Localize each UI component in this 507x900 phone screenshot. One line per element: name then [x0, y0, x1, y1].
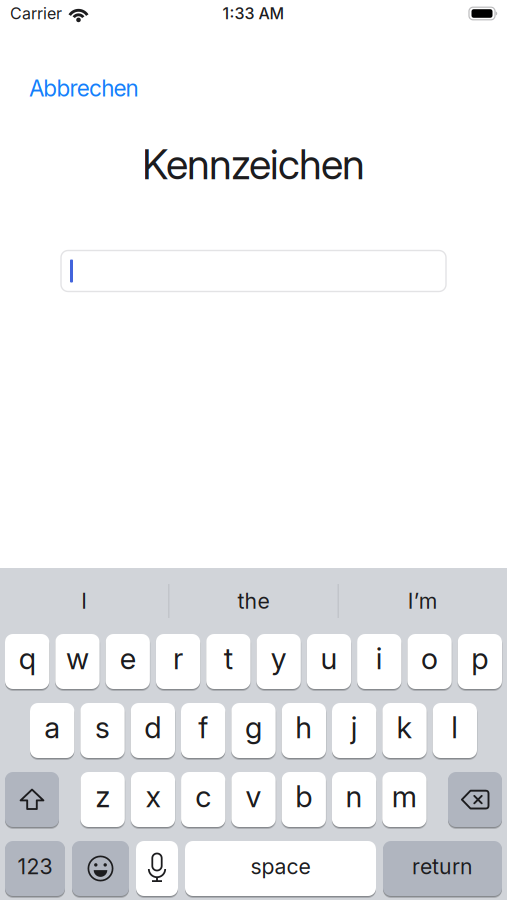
button[interactable]: i	[357, 634, 401, 689]
staticText: u	[320, 641, 337, 676]
staticText: h	[295, 710, 312, 745]
staticText: I	[81, 588, 87, 614]
staticText: space	[250, 854, 310, 879]
staticText: y	[271, 641, 287, 676]
button[interactable]: Kennzeichen	[61, 250, 446, 291]
staticText: c	[195, 779, 211, 814]
button[interactable]: o	[407, 634, 452, 689]
button[interactable]: j	[332, 703, 376, 758]
staticText: m	[392, 779, 417, 814]
button[interactable]: v	[231, 772, 276, 827]
staticText: b	[295, 779, 312, 814]
button[interactable]: t	[206, 634, 250, 689]
button[interactable]: s	[80, 703, 125, 758]
button[interactable]: the	[169, 568, 338, 634]
button[interactable]: return	[383, 841, 502, 896]
button[interactable]: h	[282, 703, 326, 758]
staticText: a	[44, 710, 60, 745]
staticText: Carrier	[10, 4, 62, 23]
button[interactable]: Shift	[5, 772, 59, 827]
button[interactable]: Abbrechen	[29, 75, 139, 102]
button[interactable]: k	[382, 703, 427, 758]
staticText: Kennzeichen	[142, 140, 365, 188]
staticText: 123	[17, 854, 52, 879]
staticText: w	[66, 641, 89, 676]
button[interactable]: I	[0, 568, 168, 634]
button[interactable]: l	[433, 703, 477, 758]
button[interactable]: Delete	[448, 772, 502, 827]
button[interactable]: c	[181, 772, 225, 827]
button[interactable]: n	[332, 772, 376, 827]
staticText: i	[376, 641, 383, 676]
button[interactable]: r	[156, 634, 200, 689]
staticText: 1:33 AM	[222, 4, 284, 23]
button[interactable]: b	[282, 772, 326, 827]
staticText: k	[396, 710, 412, 745]
staticText: z	[95, 779, 110, 814]
button[interactable]: x	[131, 772, 175, 827]
button[interactable]: I’m	[339, 568, 507, 634]
staticText: p	[471, 641, 488, 676]
button[interactable]: Emoji	[72, 841, 129, 896]
button[interactable]: space	[185, 841, 376, 896]
staticText: r	[173, 641, 183, 676]
button[interactable]: 123	[5, 841, 65, 896]
button[interactable]: w	[55, 634, 100, 689]
staticText: s	[95, 710, 110, 745]
button[interactable]: f	[181, 703, 225, 758]
button[interactable]: g	[231, 703, 276, 758]
button[interactable]: Dictate	[136, 841, 178, 896]
button[interactable]: z	[80, 772, 125, 827]
staticText: g	[245, 710, 262, 745]
button[interactable]: q	[5, 634, 49, 689]
staticText: f	[198, 710, 208, 745]
staticText: the	[237, 588, 269, 614]
staticText: I’m	[408, 588, 438, 614]
staticText: return	[412, 854, 473, 879]
staticText: Abbrechen	[29, 75, 139, 102]
staticText: n	[346, 779, 363, 814]
staticText: q	[19, 641, 36, 676]
button[interactable]: m	[382, 772, 426, 827]
staticText: v	[245, 779, 261, 814]
staticText: o	[421, 641, 438, 676]
button[interactable]: u	[307, 634, 351, 689]
staticText: d	[144, 710, 161, 745]
staticText: j	[351, 710, 358, 745]
staticText: x	[145, 779, 160, 814]
staticText: e	[120, 641, 136, 676]
staticText: l	[451, 710, 458, 745]
button[interactable]: d	[131, 703, 175, 758]
button[interactable]: e	[106, 634, 150, 689]
button[interactable]: p	[458, 634, 502, 689]
button[interactable]: a	[30, 703, 74, 758]
button[interactable]: y	[256, 634, 301, 689]
staticText: t	[224, 641, 233, 676]
